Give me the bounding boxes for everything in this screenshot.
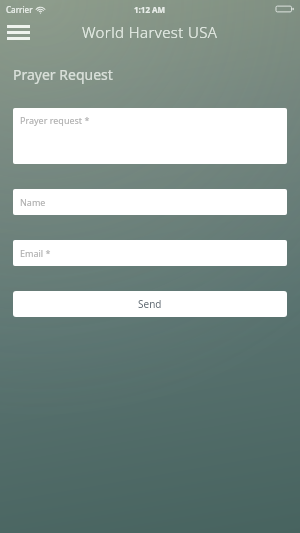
staticText: Prayer Request <box>13 65 113 84</box>
staticText: 1:12 AM <box>134 4 166 15</box>
button[interactable]: Send <box>13 291 287 317</box>
staticText: Prayer request * <box>20 114 90 126</box>
staticText: Carrier <box>6 4 33 15</box>
staticText: World Harvest USA <box>82 22 218 42</box>
button[interactable]: Email * <box>13 240 287 266</box>
button[interactable]: Name <box>13 189 287 215</box>
staticText: Send <box>138 297 162 311</box>
button[interactable]: Open navigation menu <box>7 22 30 42</box>
staticText: Name <box>20 196 46 208</box>
staticText: Email * <box>20 247 51 259</box>
button[interactable]: Prayer request * <box>13 108 287 164</box>
